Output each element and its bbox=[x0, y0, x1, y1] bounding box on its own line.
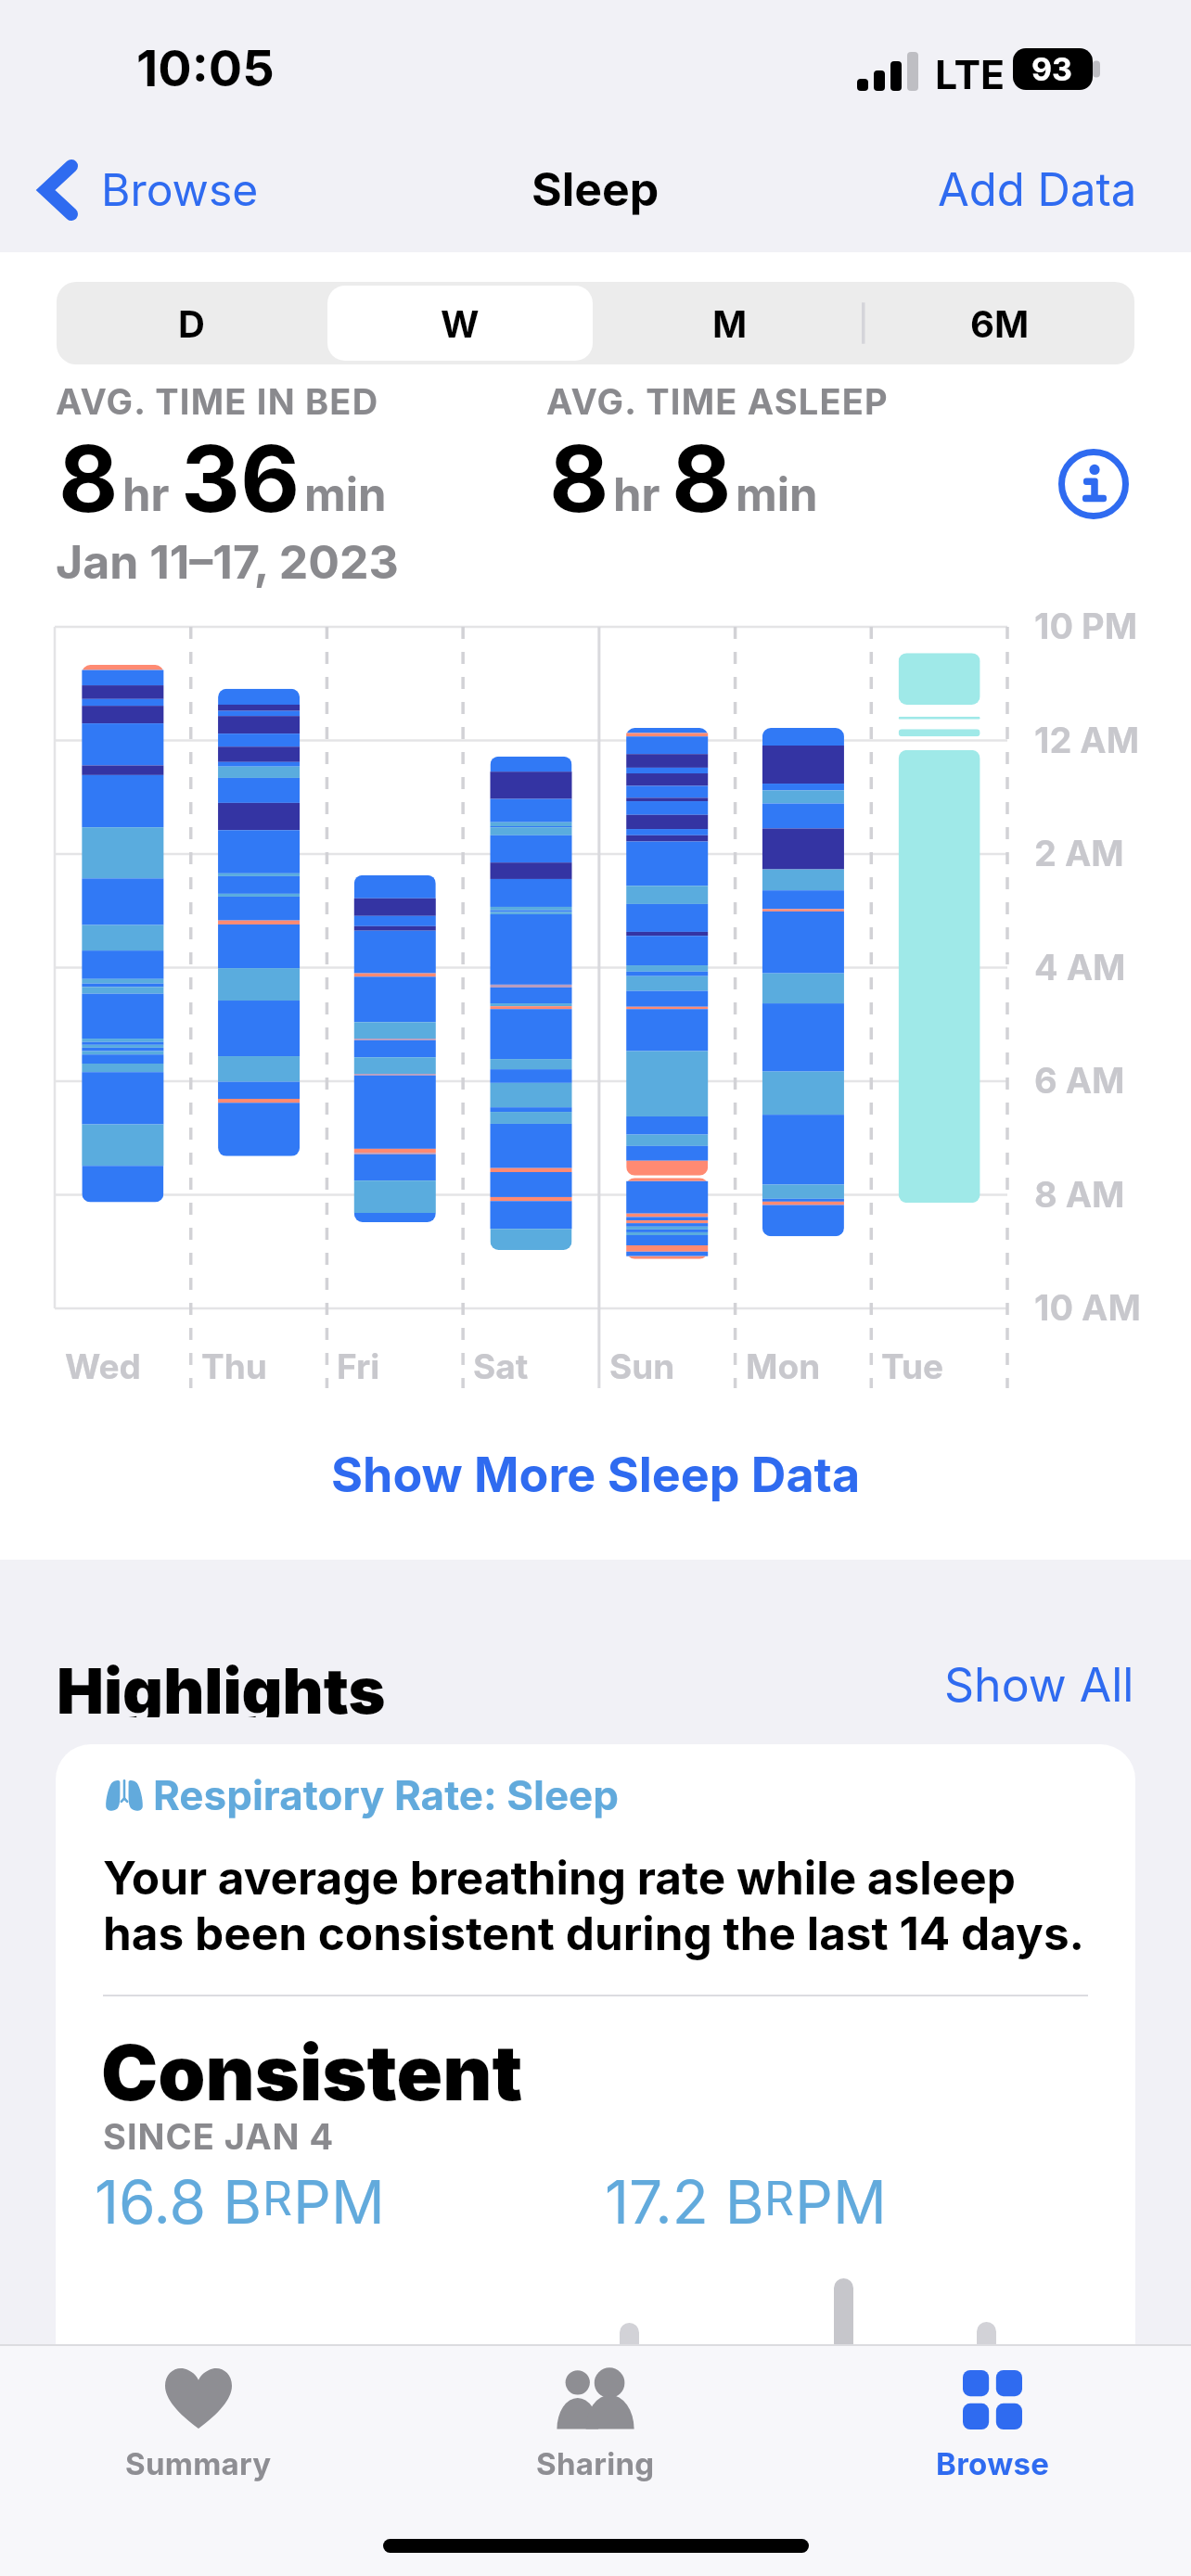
staticText: R bbox=[764, 2171, 795, 2226]
staticText: Jan 11–17, 2023 bbox=[56, 534, 399, 590]
staticText: Wed bbox=[65, 1345, 141, 1387]
staticText: R bbox=[263, 2171, 293, 2226]
button[interactable]: W bbox=[326, 282, 595, 364]
staticText: Sat bbox=[473, 1345, 529, 1387]
staticText: 8 bbox=[672, 423, 732, 534]
staticText: Sharing bbox=[536, 2445, 655, 2482]
staticText: 10 PM bbox=[1034, 605, 1138, 647]
staticText: 2 AM bbox=[1034, 832, 1124, 874]
staticText: Tue bbox=[881, 1345, 944, 1387]
staticText: 8 bbox=[58, 423, 119, 534]
staticText: Add Data bbox=[938, 162, 1137, 217]
staticText: PM bbox=[795, 2166, 887, 2238]
staticText: 17.2 B bbox=[605, 2166, 764, 2238]
staticText: min bbox=[304, 467, 387, 522]
staticText: Consistent bbox=[101, 2027, 523, 2119]
staticText: 4 AM bbox=[1034, 946, 1126, 988]
staticText: 93 bbox=[1031, 50, 1073, 88]
staticText: 10:05 bbox=[136, 38, 275, 98]
staticText: M bbox=[712, 301, 748, 346]
staticText: 10 AM bbox=[1034, 1286, 1141, 1329]
staticText: 16.8 B bbox=[95, 2166, 263, 2238]
button[interactable]: Show More Sleep Data bbox=[0, 1442, 1191, 1507]
staticText: 12 AM bbox=[1034, 719, 1140, 761]
staticText: Show All bbox=[944, 1657, 1134, 1713]
staticText: 8 AM bbox=[1034, 1173, 1125, 1216]
staticText: 8 bbox=[549, 423, 609, 534]
staticText: PM bbox=[293, 2166, 385, 2238]
button[interactable]: Info bbox=[1057, 448, 1130, 520]
staticText: Thu bbox=[201, 1345, 267, 1387]
staticText: W bbox=[441, 301, 480, 346]
staticText: Browse bbox=[936, 2445, 1050, 2482]
button[interactable]: Summary bbox=[0, 2346, 397, 2504]
staticText: hr bbox=[122, 467, 170, 522]
button[interactable]: Respiratory Rate: Sleep bbox=[56, 1744, 1135, 2356]
staticText: 6M bbox=[970, 301, 1030, 346]
staticText: Mon bbox=[746, 1345, 821, 1387]
staticText: Summary bbox=[125, 2445, 272, 2482]
staticText: Your average breathing rate while asleep… bbox=[103, 1850, 1085, 1961]
button[interactable]: Show All bbox=[944, 1657, 1134, 1713]
staticText: min bbox=[736, 467, 818, 522]
button[interactable]: Add Data bbox=[938, 163, 1137, 218]
button[interactable]: 6M bbox=[864, 282, 1134, 364]
staticText: D bbox=[178, 301, 205, 346]
staticText: 36 bbox=[181, 423, 301, 534]
staticText: Respiratory Rate: Sleep bbox=[153, 1770, 620, 1819]
staticText: Sleep bbox=[531, 161, 660, 217]
staticText: AVG. TIME ASLEEP bbox=[546, 380, 889, 423]
button[interactable]: D bbox=[57, 282, 326, 364]
staticText: 6 AM bbox=[1034, 1059, 1125, 1102]
button[interactable]: Sharing bbox=[397, 2346, 794, 2504]
staticText: SINCE JAN 4 bbox=[103, 2115, 335, 2158]
staticText: AVG. TIME IN BED bbox=[56, 380, 379, 423]
button[interactable]: M bbox=[595, 282, 864, 364]
button[interactable]: Browse bbox=[39, 159, 259, 221]
staticText: hr bbox=[613, 467, 660, 522]
staticText: Sun bbox=[609, 1345, 675, 1387]
button[interactable]: Browse bbox=[794, 2346, 1191, 2504]
staticText: Highlights bbox=[57, 1652, 386, 1717]
staticText: Browse bbox=[101, 162, 259, 216]
staticText: Show More Sleep Data bbox=[331, 1446, 861, 1504]
staticText: Fri bbox=[337, 1345, 380, 1387]
staticText: LTE bbox=[935, 50, 1005, 98]
